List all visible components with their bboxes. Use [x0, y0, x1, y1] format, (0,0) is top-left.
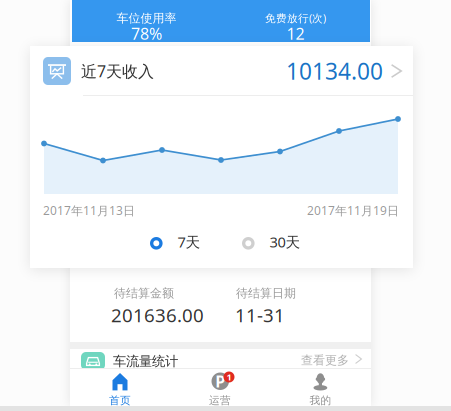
button[interactable]: 7天 [146, 233, 208, 254]
staticText: 近7天收入 [81, 60, 154, 82]
staticText: 30天 [269, 232, 300, 251]
staticText: 10134.00 [286, 56, 383, 86]
staticText: 2017年11月19日 [307, 202, 399, 218]
staticText: P [215, 371, 225, 392]
staticText: 查看更多 [301, 353, 349, 368]
button[interactable]: 30天 [238, 233, 310, 254]
staticText: 2017年11月13日 [43, 202, 135, 218]
button[interactable]: 首页 [70, 369, 170, 406]
button[interactable]: 我的 [270, 369, 371, 406]
staticText: 运营 [209, 394, 231, 407]
staticText: 7天 [177, 232, 200, 251]
button[interactable]: 车流量统计 [70, 349, 371, 373]
staticText: 首页 [109, 394, 131, 407]
button[interactable]: 近7天收入 [30, 46, 413, 95]
staticText: 待结算日期 [236, 286, 296, 301]
staticText: 待结算金额 [114, 286, 174, 301]
staticText: 11-31 [235, 302, 285, 327]
staticText: 我的 [309, 394, 331, 407]
staticText: 车流量统计 [113, 353, 178, 369]
button[interactable]: P [170, 369, 270, 406]
staticText: 免费放行(次) [265, 11, 326, 25]
staticText: 1 [226, 371, 231, 383]
staticText: 201636.00 [111, 302, 204, 327]
staticText: 78% [131, 23, 162, 44]
staticText: 12 [286, 23, 304, 44]
staticText: 车位使用率 [116, 11, 176, 26]
